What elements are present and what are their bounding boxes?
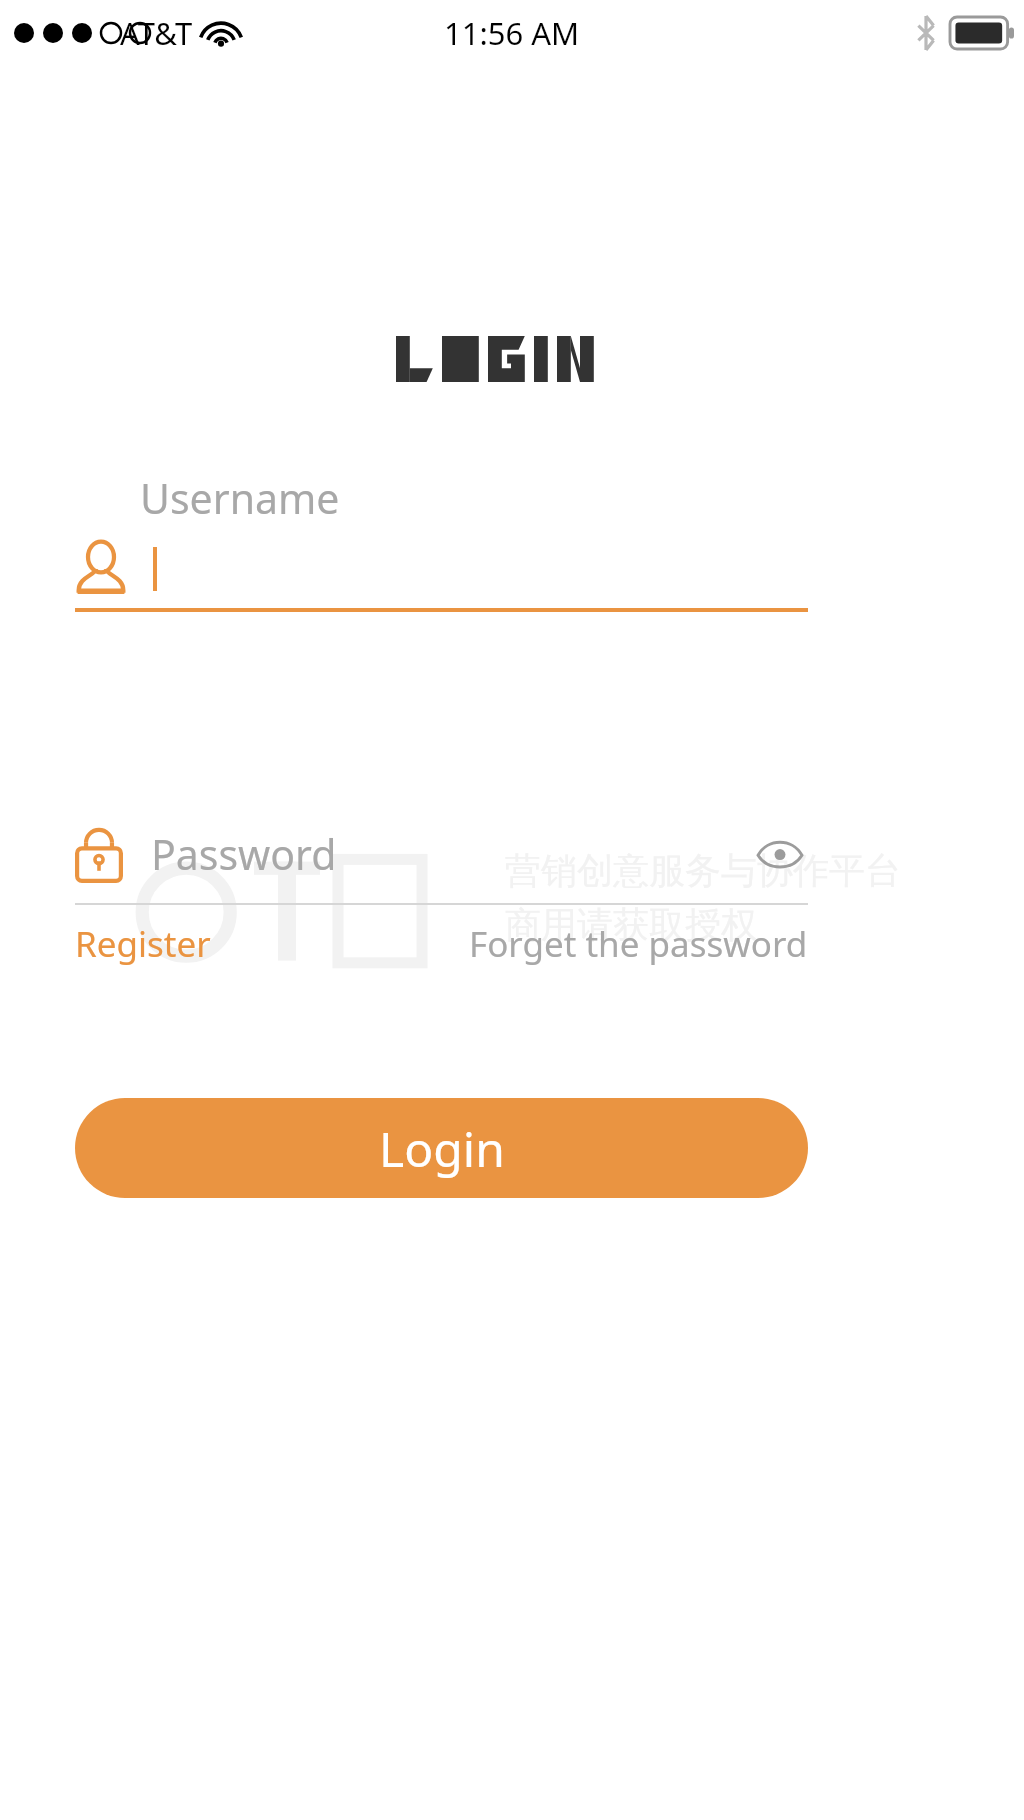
button[interactable]: Show password (752, 826, 808, 882)
staticText: Password (151, 826, 337, 882)
staticText: AT&T (120, 12, 193, 54)
staticText: Forget the password (469, 920, 808, 968)
staticText: Login (379, 1116, 505, 1181)
staticText: 商用请获取授权 (505, 902, 757, 947)
button[interactable]: Forget the password (469, 920, 808, 968)
button[interactable]: Password (75, 815, 808, 893)
button[interactable]: Register (75, 920, 211, 968)
staticText: 11:56 AM (444, 12, 580, 54)
button[interactable] (75, 540, 808, 598)
staticText: Username (140, 470, 340, 526)
button[interactable]: Login (75, 1098, 808, 1198)
staticText: 营销创意服务与协作平台 (505, 848, 901, 893)
staticText: Register (75, 920, 211, 968)
